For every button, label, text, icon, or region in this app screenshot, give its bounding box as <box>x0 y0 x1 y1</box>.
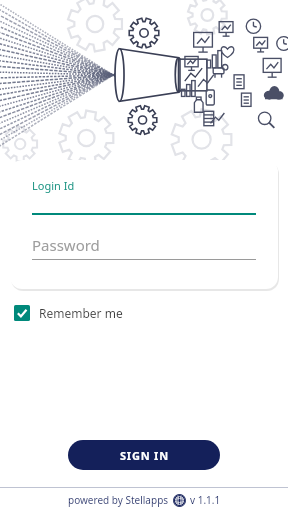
staticText: Login Id <box>32 178 75 193</box>
staticText: powered by Stellapps <box>68 493 169 507</box>
staticText: SIGN IN <box>120 448 169 463</box>
button[interactable]: SIGN IN <box>68 440 220 470</box>
staticText: v 1.1.1 <box>190 493 221 507</box>
staticText: Password <box>32 235 100 255</box>
button[interactable]: Remember me <box>12 303 125 323</box>
staticText: Remember me <box>39 305 123 321</box>
